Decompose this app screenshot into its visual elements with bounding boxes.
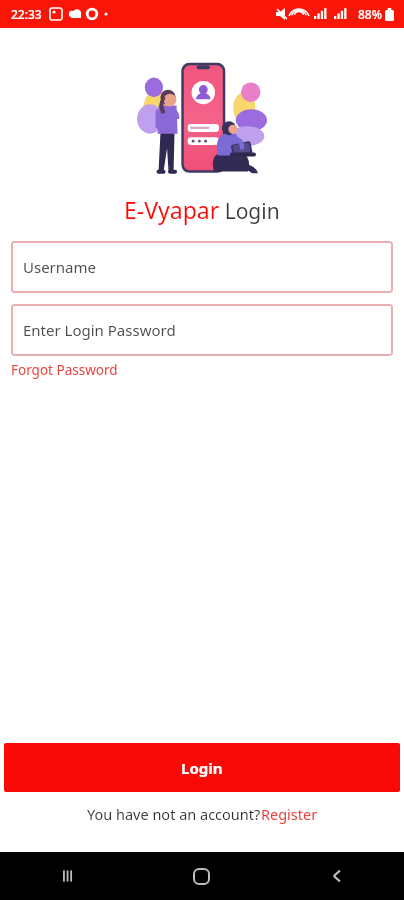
button[interactable]: Back (269, 852, 404, 900)
button[interactable]: Login (4, 743, 400, 792)
button[interactable]: Home (134, 852, 269, 900)
button[interactable]: Enter Login Password (11, 304, 393, 356)
staticText: Forgot Password (11, 361, 118, 379)
staticText: You have not an account? (87, 804, 261, 824)
staticText: 22:33 (11, 6, 42, 22)
staticText: Username (23, 257, 96, 277)
button[interactable]: You have not an account? (87, 802, 318, 826)
staticText: Login (181, 758, 223, 778)
button[interactable]: Username (11, 241, 393, 293)
button[interactable]: Forgot Password (11, 359, 118, 381)
staticText: Register (261, 804, 318, 824)
staticText: E-Vyapar Login (124, 194, 280, 225)
staticText: 88% (358, 6, 382, 22)
button[interactable]: Recent apps (0, 852, 134, 900)
staticText: Enter Login Password (23, 320, 176, 340)
